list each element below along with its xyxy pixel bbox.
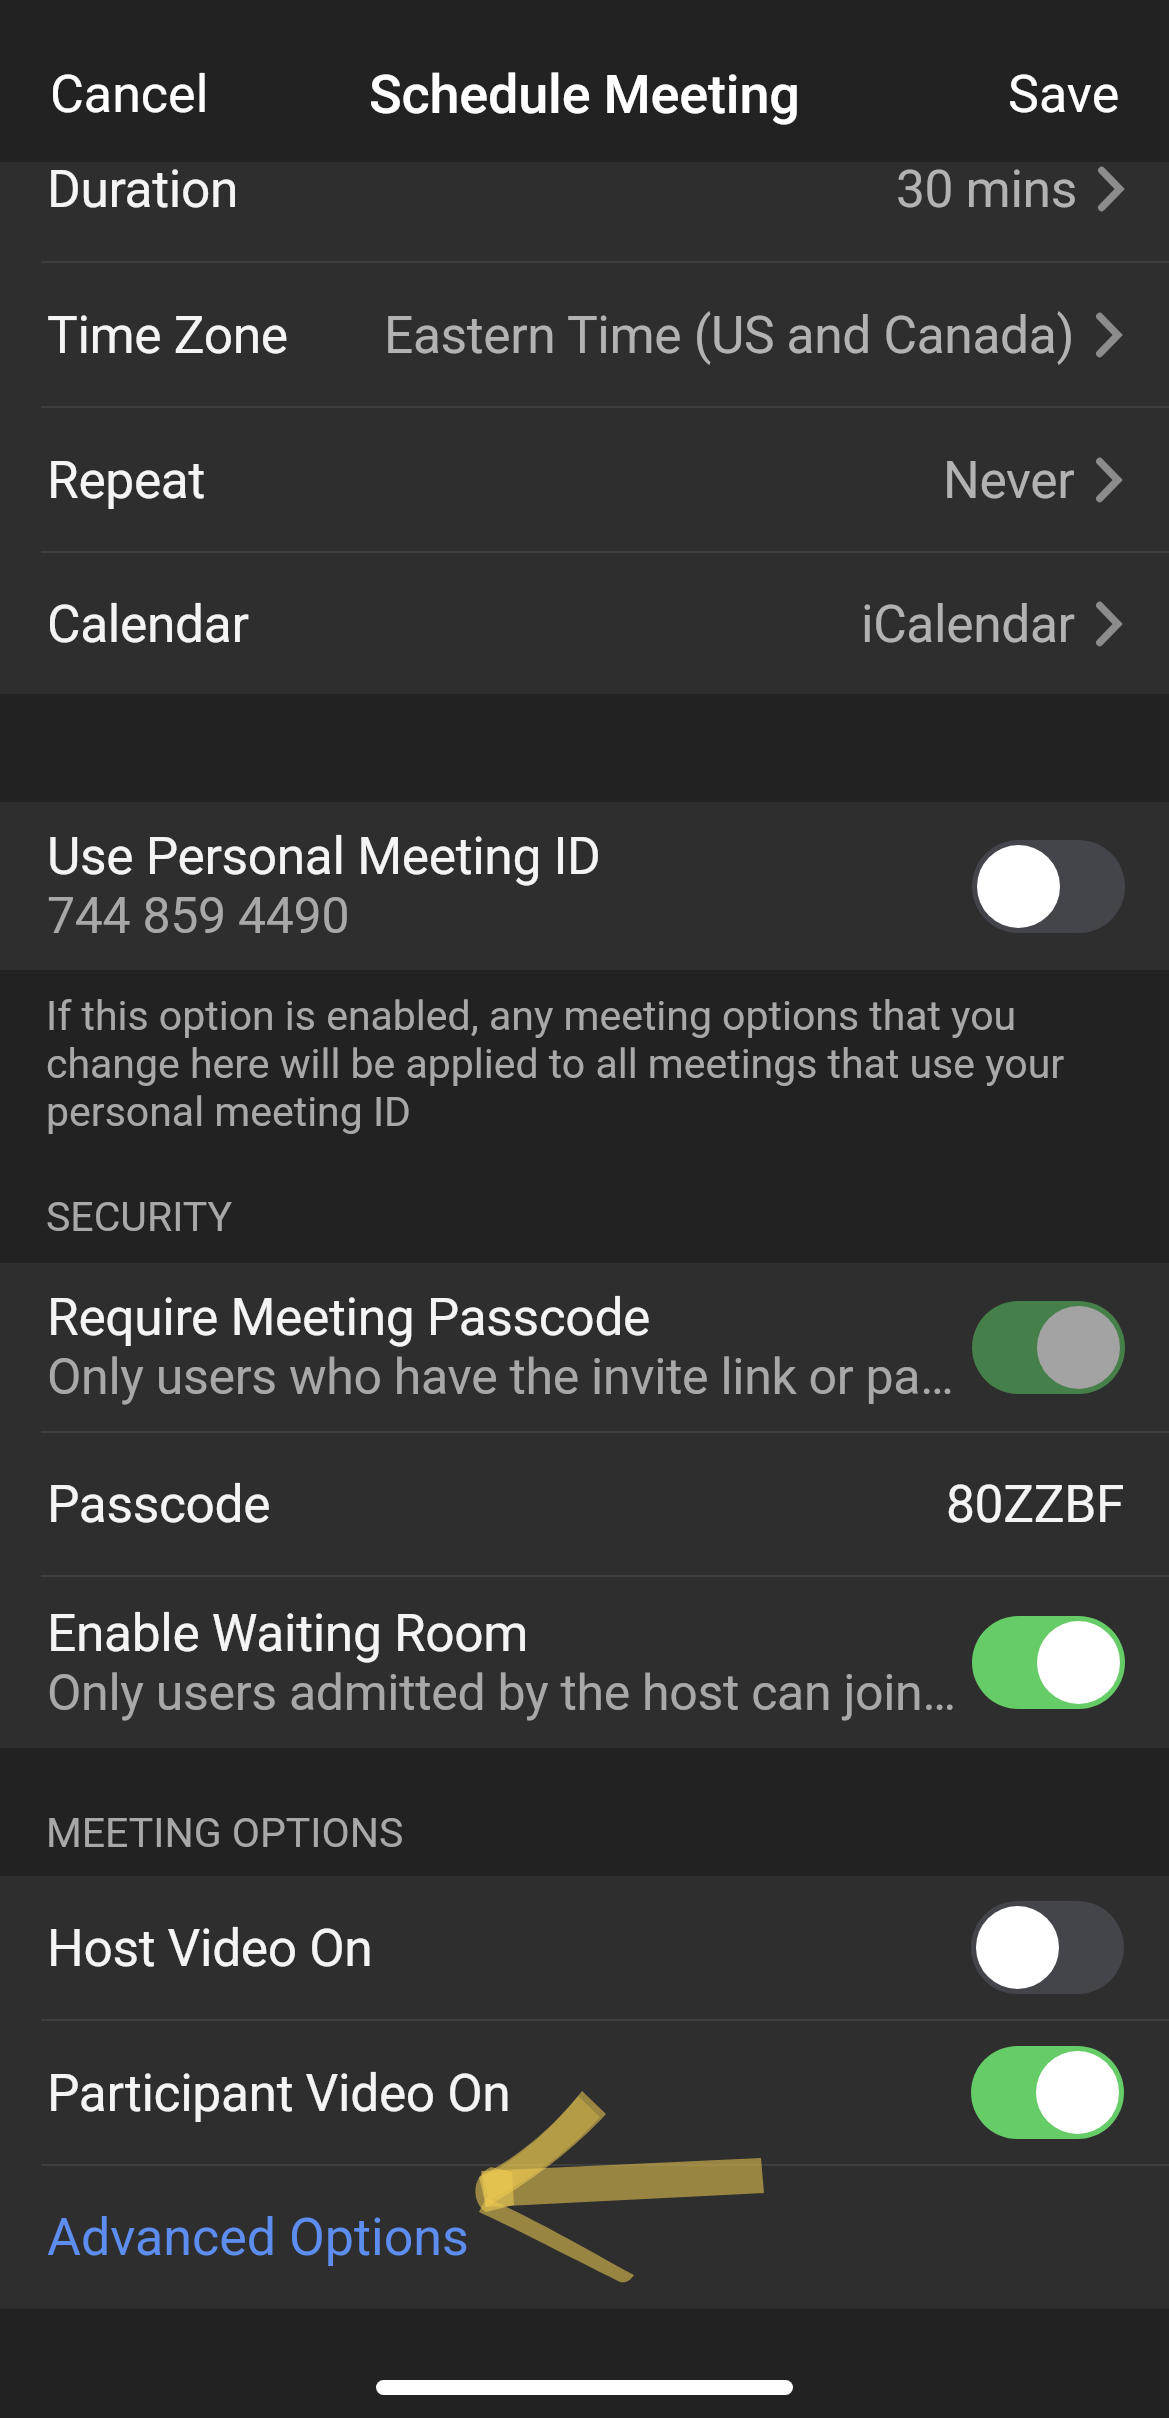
button[interactable]: Require Meeting Passcode <box>0 1263 1169 1431</box>
button[interactable]: Time Zone <box>0 263 1169 406</box>
button[interactable]: Toggle Host Video On <box>971 1901 1124 1994</box>
button[interactable]: Toggle Require Meeting Passcode <box>972 1301 1125 1394</box>
staticText: Advanced Options <box>47 2207 469 2268</box>
staticText: 80ZZBF <box>946 1474 1125 1534</box>
staticText: Use Personal Meeting ID <box>47 826 601 886</box>
staticText: iCalendar <box>861 594 1075 654</box>
button[interactable]: Duration <box>0 162 1169 261</box>
staticText: Save <box>1008 64 1120 125</box>
button[interactable]: Toggle Use Personal Meeting ID <box>972 840 1125 933</box>
button[interactable]: Save <box>1008 64 1120 125</box>
button[interactable]: Enable Waiting Room <box>0 1577 1169 1748</box>
staticText: 30 mins <box>896 159 1077 219</box>
staticText: Host Video On <box>47 1918 373 1978</box>
staticText: If this option is enabled, any meeting o… <box>46 992 1103 1136</box>
button[interactable]: Calendar <box>0 553 1169 694</box>
staticText: Duration <box>47 159 239 219</box>
button[interactable]: Advanced Options <box>0 2166 1169 2309</box>
button[interactable]: Participant Video On <box>0 2021 1169 2164</box>
button[interactable]: Passcode <box>0 1433 1169 1575</box>
staticText: Calendar <box>47 594 249 654</box>
button[interactable]: Toggle Enable Waiting Room <box>972 1616 1125 1709</box>
staticText: Never <box>943 450 1075 510</box>
button[interactable]: Toggle Participant Video On <box>971 2046 1124 2139</box>
staticText: MEETING OPTIONS <box>46 1809 404 1857</box>
button[interactable]: Use Personal Meeting ID <box>0 802 1169 970</box>
staticText: Enable Waiting Room <box>47 1603 529 1663</box>
staticText: Participant Video On <box>47 2063 511 2123</box>
staticText: Only users who have the invite link or p… <box>47 1348 954 1407</box>
staticText: Repeat <box>47 450 206 510</box>
staticText: Cancel <box>50 64 209 125</box>
staticText: Only users admitted by the host can join… <box>47 1664 956 1723</box>
staticText: SECURITY <box>46 1193 233 1241</box>
staticText: Time Zone <box>47 305 288 365</box>
staticText: Require Meeting Passcode <box>47 1287 651 1347</box>
button[interactable]: Host Video On <box>0 1876 1169 2019</box>
button[interactable]: Cancel <box>50 64 209 125</box>
staticText: Passcode <box>47 1474 271 1534</box>
button[interactable]: Repeat <box>0 408 1169 551</box>
staticText: Eastern Time (US and Canada) <box>384 305 1075 365</box>
staticText: Schedule Meeting <box>369 63 800 126</box>
staticText: 744 859 4490 <box>47 887 350 946</box>
